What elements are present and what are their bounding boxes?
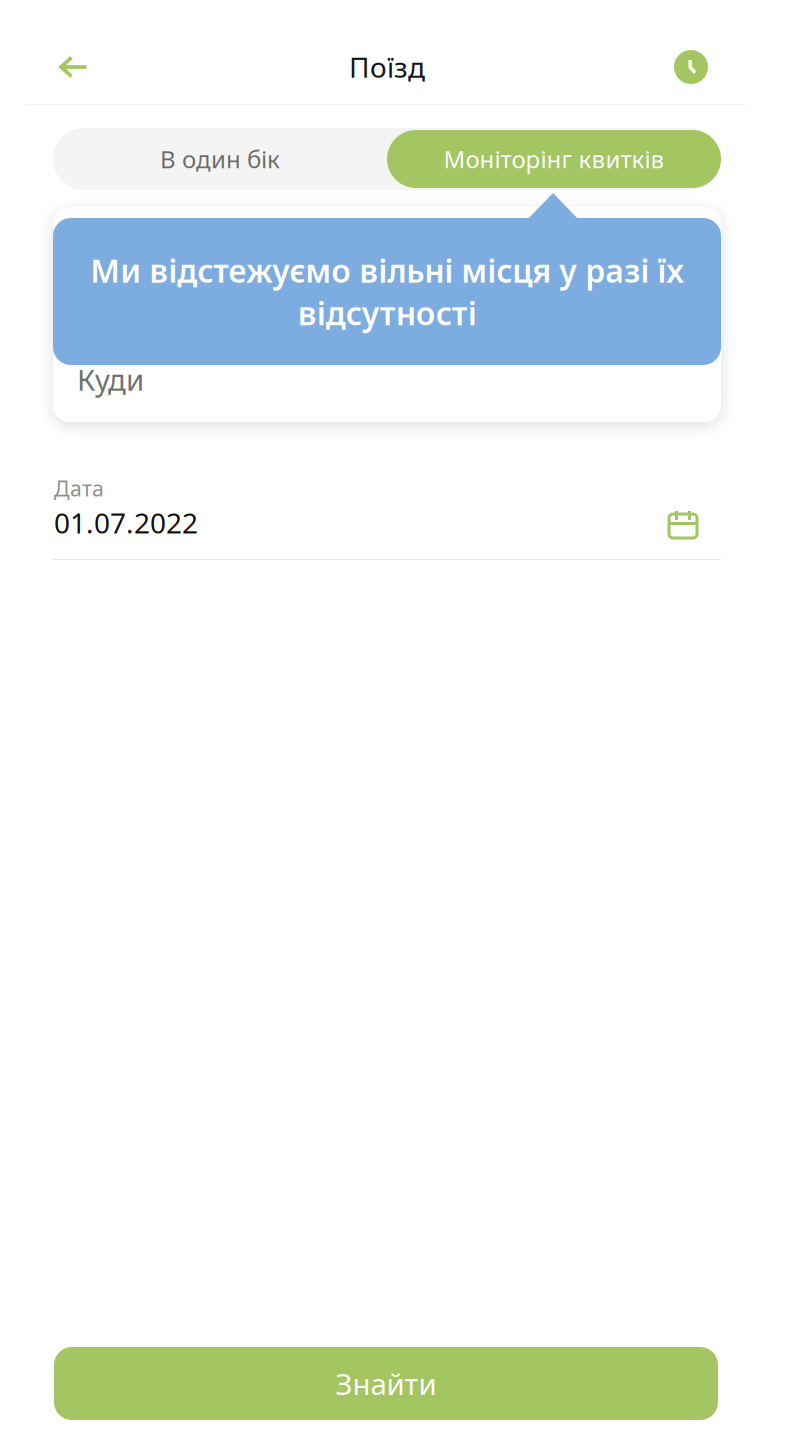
staticText: Дата [54, 474, 104, 502]
button[interactable]: Куди [53, 207, 721, 422]
button[interactable]: Back [36, 30, 110, 104]
button[interactable]: History [654, 30, 728, 104]
staticText: Моніторінг квитків [443, 143, 664, 175]
button[interactable]: Знайти [54, 1347, 718, 1420]
button[interactable]: Дата [53, 474, 721, 560]
button[interactable]: Моніторінг квитків [387, 128, 721, 190]
staticText: В один бік [160, 143, 280, 175]
staticText: Знайти [335, 1364, 436, 1403]
button[interactable]: В один бік [53, 128, 387, 190]
staticText: Куди [77, 360, 144, 399]
staticText: 01.07.2022 [54, 504, 198, 541]
staticText: Ми відстежуємо вільні місця у разі їх ві… [90, 249, 684, 334]
button[interactable]: Pick date [661, 502, 705, 546]
staticText: Поїзд [349, 48, 425, 86]
